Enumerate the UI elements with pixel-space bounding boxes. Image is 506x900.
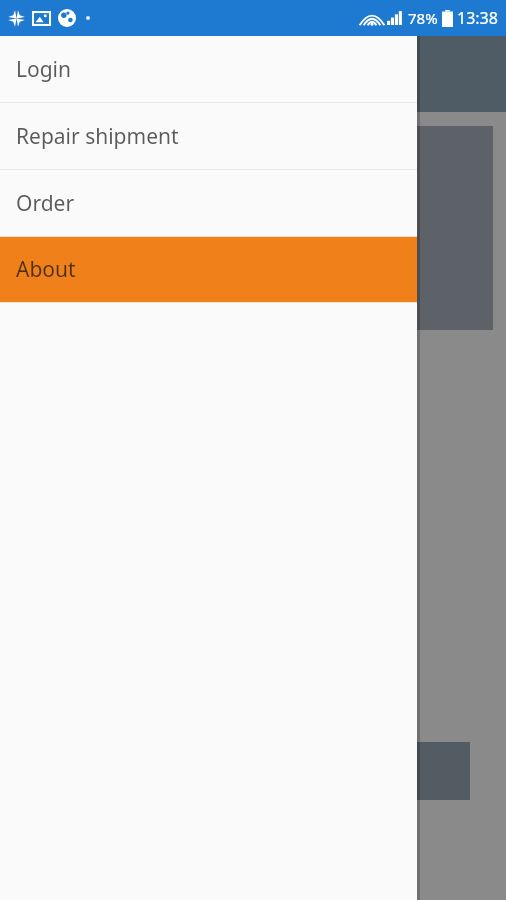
staticText: 13:38 bbox=[457, 7, 498, 29]
button[interactable] bbox=[36, 742, 470, 800]
staticText: Repair shipment bbox=[16, 122, 179, 151]
staticText: Search for repair facilities bbox=[34, 217, 237, 240]
staticText: Order bbox=[16, 189, 75, 218]
button[interactable]: About bbox=[0, 237, 417, 302]
button[interactable] bbox=[0, 36, 506, 900]
staticText: 78% bbox=[408, 8, 438, 28]
button[interactable]: Order bbox=[0, 170, 417, 236]
button[interactable]: Login bbox=[0, 36, 417, 102]
staticText: Login bbox=[16, 55, 72, 84]
button[interactable]: Repair shipment bbox=[0, 103, 417, 169]
staticText: About bbox=[16, 255, 76, 284]
